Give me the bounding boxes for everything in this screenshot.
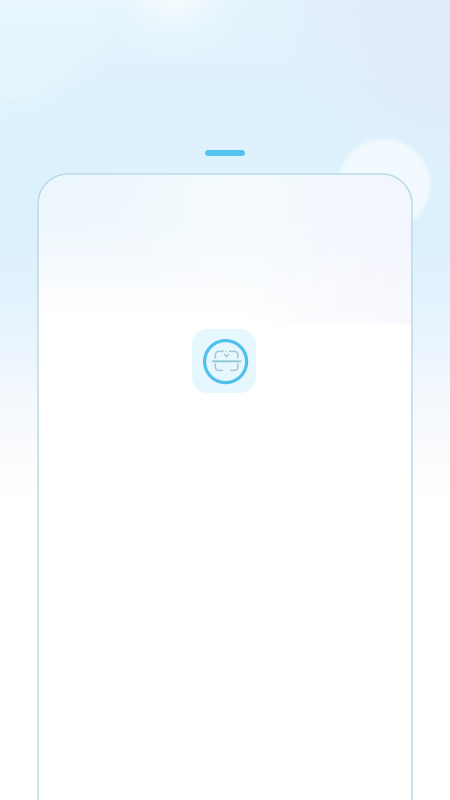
button[interactable]: Face ID — [192, 329, 256, 393]
